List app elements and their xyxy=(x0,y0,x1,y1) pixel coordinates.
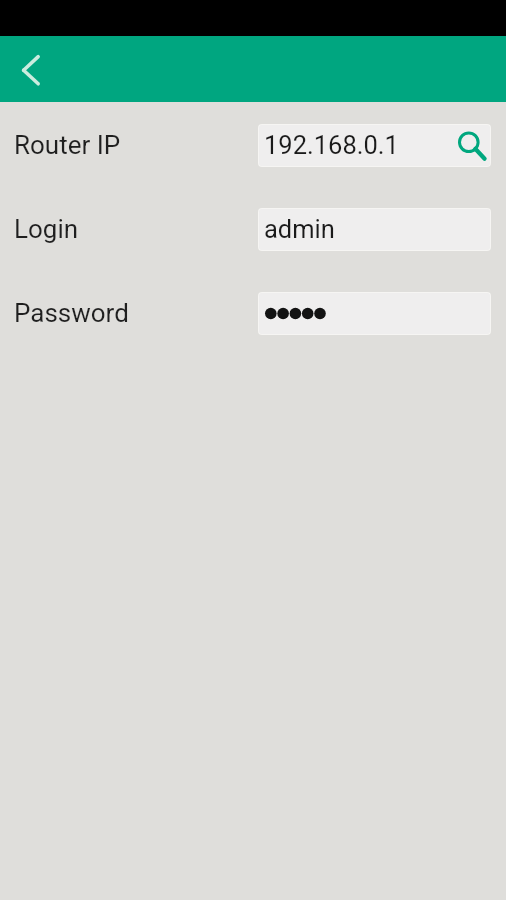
button[interactable]: Search xyxy=(448,125,490,166)
button[interactable]: 192.168.0.1 xyxy=(259,125,490,166)
button[interactable]: admin xyxy=(259,209,490,250)
staticText: Password xyxy=(14,298,129,328)
button[interactable]: Password xyxy=(0,292,258,335)
staticText: Router IP xyxy=(14,130,121,160)
staticText: admin xyxy=(264,214,335,244)
button[interactable]: Navigate up xyxy=(0,36,62,102)
button[interactable]: Router IP xyxy=(0,124,258,167)
staticText: 192.168.0.1 xyxy=(264,130,399,160)
button[interactable] xyxy=(259,293,490,334)
button[interactable]: Login xyxy=(0,208,258,251)
staticText: Login xyxy=(14,214,79,244)
